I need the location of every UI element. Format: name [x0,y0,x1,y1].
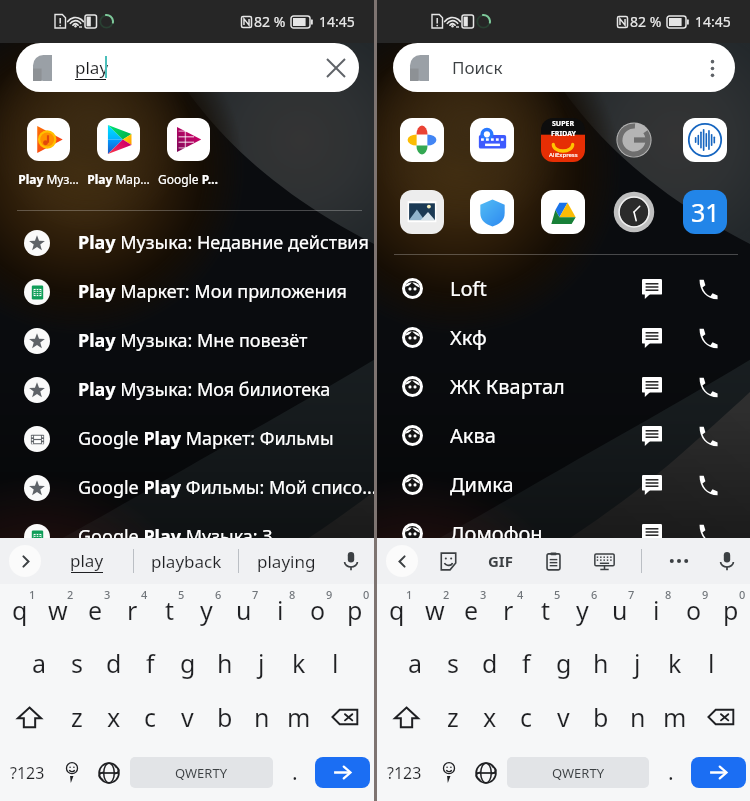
button[interactable]: Emoji [430,744,467,801]
button[interactable]: e [453,584,490,636]
button[interactable]: Play Маркет: Мои приложения [0,267,374,316]
button[interactable]: Аква [377,411,750,460]
button[interactable]: i [262,584,299,636]
button[interactable]: s [58,636,95,690]
button[interactable]: Loft [377,264,750,313]
button[interactable]: play [41,538,133,584]
button[interactable]: d [471,636,508,690]
button[interactable]: App [541,190,585,234]
button[interactable]: y [564,584,601,636]
button[interactable]: y [188,584,225,636]
button[interactable]: App [400,190,444,234]
button[interactable]: Expand [9,545,41,577]
button[interactable]: Voice input [710,544,744,578]
button[interactable]: QWERTY [130,757,273,788]
button[interactable]: f [132,636,169,690]
button[interactable]: ЖК Квартал [377,362,750,411]
button[interactable]: Димка [377,460,750,509]
button[interactable]: Google Play Фильмы: Мой списо… [0,463,374,512]
button[interactable]: play [16,43,359,92]
button[interactable]: g [169,636,206,690]
button[interactable]: q [1,584,39,636]
button[interactable]: l [693,636,730,690]
button[interactable]: n [619,690,656,744]
button[interactable]: ?123 [2,744,53,801]
button[interactable]: Call [694,472,720,498]
button[interactable]: o [675,584,712,636]
button[interactable]: Keyboard mode [588,545,620,577]
button[interactable]: App [470,118,514,162]
button[interactable]: j [243,636,280,690]
button[interactable]: Clipboard [537,545,569,577]
button[interactable]: d [95,636,132,690]
button[interactable]: Call [694,276,720,302]
button[interactable]: Message [635,370,669,404]
button[interactable]: v [545,690,582,744]
button[interactable]: j [619,636,656,690]
button[interactable]: q [378,584,416,636]
button[interactable]: m [280,690,317,744]
button[interactable]: v [169,690,206,744]
button[interactable]: Play Музыка: Моя билиотека [0,365,374,414]
button[interactable]: Google Play Маркет: Фильмы [0,414,374,463]
button[interactable]: QWERTY [507,757,649,788]
button[interactable]: h [582,636,619,690]
button[interactable]: r [114,584,151,636]
button[interactable]: Домофон [377,509,750,558]
button[interactable]: More [663,545,695,577]
button[interactable]: k [280,636,317,690]
button[interactable]: playing [239,538,334,584]
button[interactable]: z [434,690,471,744]
button[interactable]: App [683,190,727,234]
button[interactable]: t [151,584,188,636]
button[interactable]: Google P… [153,118,223,187]
button[interactable]: Call [694,521,720,547]
button[interactable]: e [77,584,114,636]
button[interactable]: Backspace [317,690,373,744]
button[interactable]: r [490,584,527,636]
button[interactable]: Google Play Музыка: З… [0,512,374,561]
button[interactable]: b [582,690,619,744]
button[interactable]: Message [635,272,669,306]
button[interactable]: Backspace [693,690,749,744]
button[interactable]: . [652,744,689,801]
button[interactable]: Search [315,757,370,788]
button[interactable]: Message [635,468,669,502]
button[interactable]: h [206,636,243,690]
button[interactable]: Play Муз… [13,118,83,187]
button[interactable]: Хкф [377,313,750,362]
button[interactable]: f [508,636,545,690]
button[interactable]: Play Музыка: Мне повезёт [0,316,374,365]
button[interactable]: Play Мар… [83,118,153,187]
button[interactable]: Clear [313,45,359,91]
button[interactable]: Voice input [334,544,368,578]
button[interactable]: w [416,584,453,636]
button[interactable]: o [299,584,336,636]
button[interactable]: p [336,584,373,636]
button[interactable]: App [400,118,444,162]
button[interactable]: GIF [482,543,518,579]
button[interactable]: App [470,190,514,234]
button[interactable]: Search [691,757,746,788]
button[interactable]: p [712,584,749,636]
button[interactable]: Emoji [53,744,90,801]
button[interactable]: u [601,584,638,636]
button[interactable]: Call [694,325,720,351]
button[interactable]: Play Музыка: Недавние действия [0,218,374,267]
button[interactable]: a [397,636,434,690]
button[interactable]: b [206,690,243,744]
button[interactable]: x [95,690,132,744]
button[interactable]: Shift [378,690,434,744]
button[interactable]: Change language [90,744,127,801]
button[interactable]: n [243,690,280,744]
button[interactable]: ?123 [379,744,430,801]
button[interactable]: Поиск [393,43,735,92]
button[interactable]: Call [694,374,720,400]
button[interactable]: t [527,584,564,636]
button[interactable]: c [508,690,545,744]
button[interactable]: u [225,584,262,636]
button[interactable]: i [638,584,675,636]
button[interactable]: Message [635,321,669,355]
button[interactable]: k [656,636,693,690]
button[interactable]: More options [689,45,735,91]
